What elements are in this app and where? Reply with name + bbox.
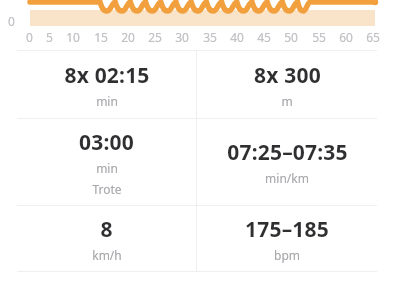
staticText: 55 bbox=[312, 29, 326, 45]
staticText: 30 bbox=[175, 29, 189, 45]
button[interactable]: 8x 300 bbox=[197, 51, 377, 118]
staticText: 03:00 bbox=[79, 128, 134, 157]
staticText: 35 bbox=[203, 29, 217, 45]
staticText: 45 bbox=[257, 29, 271, 45]
staticText: 20 bbox=[121, 29, 135, 45]
button[interactable]: 03:00 bbox=[17, 119, 196, 205]
staticText: 50 bbox=[284, 29, 298, 45]
staticText: 60 bbox=[339, 29, 353, 45]
staticText: 8 bbox=[100, 215, 113, 244]
staticText: min/km bbox=[265, 170, 309, 186]
staticText: 8x 300 bbox=[254, 61, 321, 90]
staticText: 0 bbox=[26, 29, 33, 45]
staticText: 10 bbox=[66, 29, 80, 45]
staticText: 15 bbox=[94, 29, 108, 45]
staticText: min bbox=[96, 160, 118, 176]
staticText: 0 bbox=[8, 13, 15, 29]
button[interactable]: 8 bbox=[17, 206, 196, 271]
button[interactable]: 175–185 bbox=[197, 206, 377, 271]
staticText: 25 bbox=[148, 29, 162, 45]
button[interactable]: 07:25–07:35 bbox=[197, 119, 377, 205]
staticText: Trote bbox=[92, 181, 122, 197]
staticText: 175–185 bbox=[245, 215, 329, 244]
staticText: 8x 02:15 bbox=[64, 61, 150, 90]
staticText: m bbox=[281, 93, 293, 109]
staticText: 07:25–07:35 bbox=[227, 138, 348, 167]
staticText: 5 bbox=[46, 29, 53, 45]
staticText: bpm bbox=[274, 247, 300, 263]
button[interactable]: Workout pace chart bbox=[0, 0, 400, 45]
button[interactable]: 8x 02:15 bbox=[17, 51, 196, 118]
staticText: 40 bbox=[230, 29, 244, 45]
staticText: 65 bbox=[366, 29, 380, 45]
staticText: min bbox=[96, 93, 118, 109]
staticText: km/h bbox=[92, 247, 122, 263]
